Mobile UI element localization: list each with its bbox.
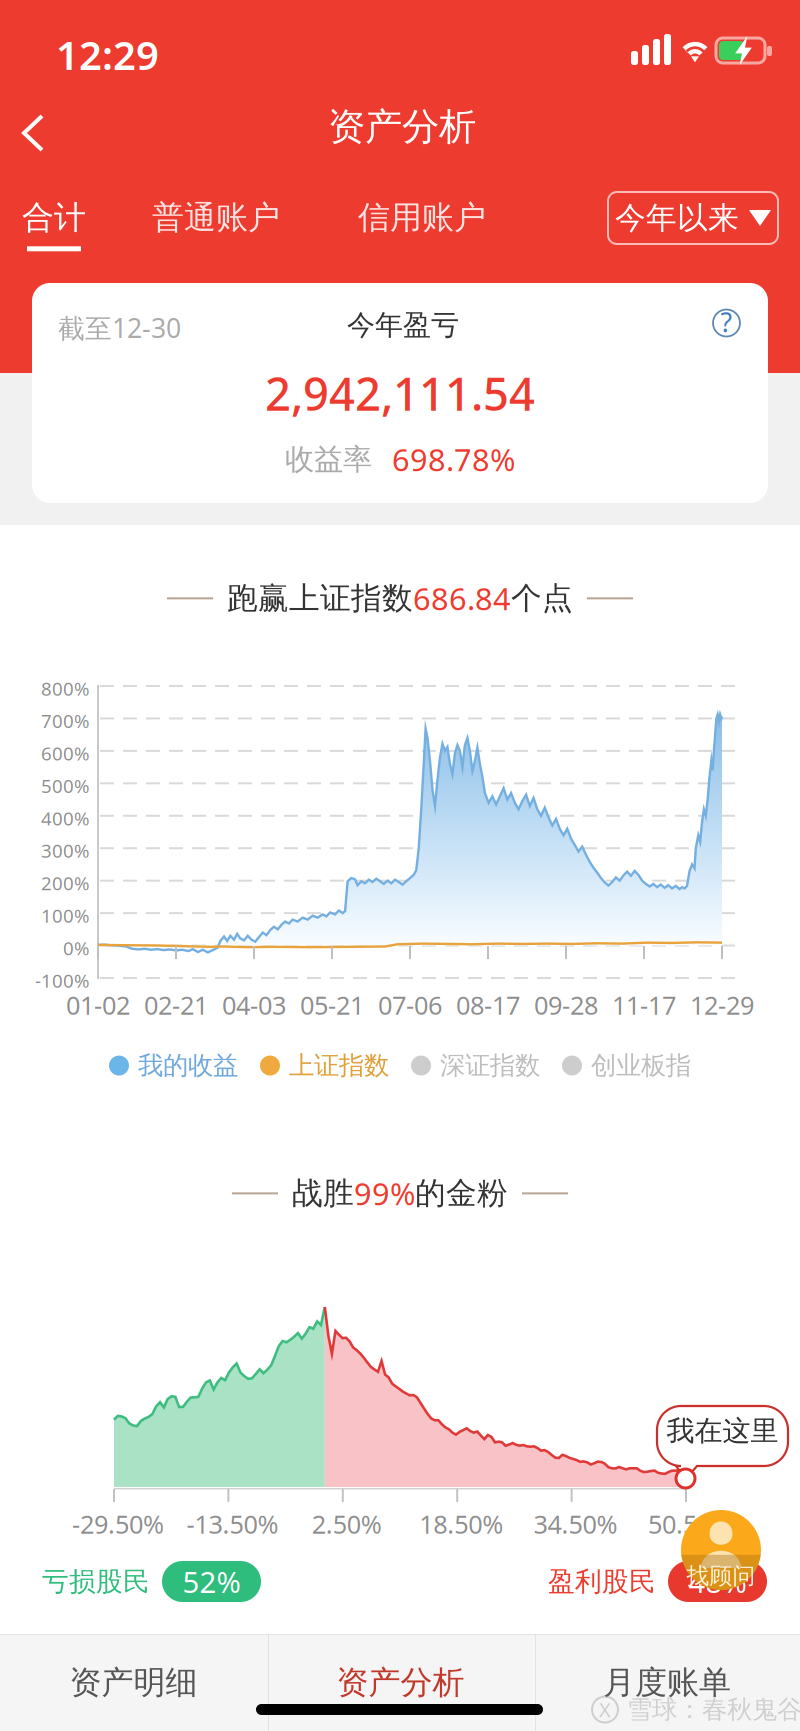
staticText: 04-03 xyxy=(222,988,286,1022)
staticText: 500% xyxy=(41,773,90,798)
staticText: 资产分析 xyxy=(336,1663,464,1702)
staticText: 上证指数 xyxy=(289,1050,389,1081)
staticText: 18.50% xyxy=(419,1507,503,1541)
staticText: 34.50% xyxy=(534,1507,618,1541)
staticText: 700% xyxy=(41,708,90,733)
staticText: 的金粉 xyxy=(415,1174,508,1212)
button[interactable]: 普通账户 xyxy=(152,198,280,237)
staticText: 跑赢上证指数 xyxy=(227,579,413,617)
staticText: 99% xyxy=(354,1173,415,1214)
staticText: 02-21 xyxy=(144,988,208,1022)
button[interactable]: 今年以来 xyxy=(608,192,778,244)
staticText: 雪球：春秋鬼谷 xyxy=(627,1694,800,1725)
staticText: 0% xyxy=(63,936,90,960)
staticText: 01-02 xyxy=(66,988,130,1022)
button[interactable]: 亏损股民 xyxy=(42,1561,261,1602)
staticText: 普通账户 xyxy=(152,198,280,237)
button[interactable]: 深证指数 xyxy=(411,1050,540,1081)
staticText: -100% xyxy=(35,968,90,993)
staticText: 50.50% xyxy=(648,1507,732,1541)
staticText: 资产分析 xyxy=(328,104,476,150)
button[interactable]: 创业板指 xyxy=(562,1050,691,1081)
button[interactable]: 资产分析 xyxy=(267,1634,534,1731)
staticText: -29.50% xyxy=(72,1507,164,1541)
staticText: 200% xyxy=(41,871,90,895)
staticText: 找顾问 xyxy=(686,1562,755,1590)
staticText: 我在这里 xyxy=(666,1414,778,1448)
button[interactable]: 月度账单 xyxy=(534,1634,800,1731)
staticText: 今年以来 xyxy=(615,199,739,237)
staticText: 深证指数 xyxy=(440,1050,540,1081)
staticText: 300% xyxy=(41,838,90,863)
button[interactable]: 我的收益 xyxy=(109,1050,238,1081)
staticText: 800% xyxy=(41,676,90,701)
staticText: 创业板指 xyxy=(591,1050,691,1081)
button[interactable]: 资产明细 xyxy=(0,1634,267,1731)
staticText: 05-21 xyxy=(300,988,364,1022)
staticText: 08-17 xyxy=(456,988,520,1022)
staticText: ? xyxy=(720,304,732,340)
staticText: 今年盈亏 xyxy=(347,308,459,342)
staticText: 12:29 xyxy=(56,28,159,81)
staticText: 48% xyxy=(688,1562,746,1601)
button[interactable]: Help xyxy=(700,297,752,349)
staticText: 686.84 xyxy=(413,578,511,619)
staticText: 07-06 xyxy=(378,988,442,1022)
staticText: 12-29 xyxy=(690,988,754,1022)
button[interactable]: 上证指数 xyxy=(260,1050,389,1081)
staticText: 战胜 xyxy=(292,1174,354,1212)
staticText: 月度账单 xyxy=(603,1663,731,1702)
staticText: 09-28 xyxy=(534,988,598,1022)
staticText: 52% xyxy=(182,1562,240,1601)
staticText: 600% xyxy=(41,741,90,766)
staticText: 2.50% xyxy=(312,1507,382,1541)
staticText: 资产明细 xyxy=(69,1663,197,1702)
staticText: 合计 xyxy=(22,198,86,237)
staticText: 亏损股民 xyxy=(42,1565,150,1598)
button[interactable]: Back xyxy=(0,92,66,174)
staticText: 我的收益 xyxy=(138,1050,238,1081)
staticText: 收益率 xyxy=(285,441,372,477)
staticText: -13.50% xyxy=(186,1507,278,1541)
staticText: 2,942,111.54 xyxy=(265,363,535,423)
staticText: 100% xyxy=(41,903,90,928)
staticText: 11-17 xyxy=(612,988,676,1022)
staticText: 信用账户 xyxy=(358,198,486,237)
staticText: 个点 xyxy=(511,579,573,617)
staticText: 698.78% xyxy=(392,439,515,480)
button[interactable]: 信用账户 xyxy=(358,198,486,237)
staticText: X xyxy=(599,1696,611,1723)
staticText: 400% xyxy=(41,806,90,831)
button[interactable]: 找顾问 xyxy=(681,1510,761,1590)
staticText: 截至12-30 xyxy=(58,310,181,345)
button[interactable]: 合计 xyxy=(22,198,86,251)
staticText: 盈利股民 xyxy=(548,1565,656,1598)
button[interactable]: 盈利股民 xyxy=(548,1561,767,1602)
